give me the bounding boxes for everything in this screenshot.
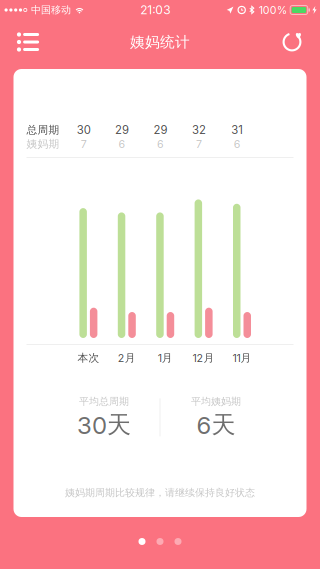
staticText: 21:03 xyxy=(140,3,170,17)
staticText: 中国移动 xyxy=(31,4,71,16)
staticText: 30 xyxy=(77,123,91,137)
staticText: 6 xyxy=(119,137,126,150)
staticText: 本次 xyxy=(77,351,99,365)
staticText: 平均总周期 xyxy=(79,395,129,408)
staticText: 100% xyxy=(259,3,287,16)
staticText: 31 xyxy=(231,123,243,137)
staticText: 29 xyxy=(115,123,129,137)
staticText: 7 xyxy=(81,137,87,150)
staticText: 29 xyxy=(153,123,167,137)
staticText: 姨妈期 xyxy=(26,137,59,151)
staticText: 32 xyxy=(192,123,206,137)
staticText: 姨妈期周期比较规律，请继续保持良好状态 xyxy=(65,486,255,499)
staticText: 平均姨妈期 xyxy=(191,395,241,408)
staticText: 姨妈统计 xyxy=(130,33,190,51)
staticText: 12月 xyxy=(193,351,215,365)
staticText: 30天 xyxy=(77,410,131,440)
staticText: 11月 xyxy=(232,351,251,365)
staticText: 6天 xyxy=(196,410,235,440)
button[interactable]: Menu xyxy=(0,20,56,64)
staticText: 1月 xyxy=(158,351,173,365)
staticText: 7 xyxy=(196,137,202,150)
staticText: 2月 xyxy=(118,351,136,365)
staticText: 6 xyxy=(157,137,164,150)
staticText: 6 xyxy=(234,137,241,150)
button[interactable]: Refresh xyxy=(264,20,320,64)
staticText: 总周期 xyxy=(26,123,59,137)
